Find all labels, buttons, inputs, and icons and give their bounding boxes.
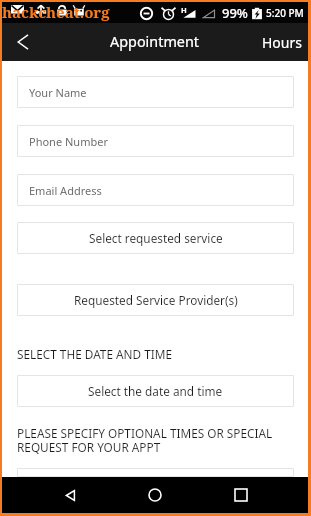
staticText: 5:20 PM — [266, 6, 304, 20]
staticText: PLEASE SPECIFY OPTIONAL TIMES OR SPECIAL… — [17, 425, 294, 455]
button[interactable]: Phone Number — [17, 125, 294, 157]
button[interactable]: Back — [52, 477, 88, 513]
staticText: hackcheat.org — [2, 2, 110, 22]
staticText: Email Address — [29, 183, 102, 198]
button[interactable]: Recent apps — [223, 477, 259, 513]
staticText: Select the date and time — [88, 383, 223, 399]
button[interactable]: Requested Service Provider(s) — [17, 284, 294, 316]
staticText: Your Name — [29, 85, 87, 100]
staticText: Select requested service — [89, 230, 223, 246]
staticText: Hours — [262, 33, 302, 52]
button[interactable]: Select the date and time — [17, 375, 294, 407]
button[interactable]: Back — [2, 23, 44, 61]
staticText: H — [181, 5, 187, 15]
staticText: 99% — [222, 4, 248, 22]
button[interactable]: Email Address — [17, 174, 294, 206]
button[interactable]: Select requested service — [17, 222, 294, 254]
button[interactable]: Home — [137, 477, 173, 513]
staticText: Requested Service Provider(s) — [74, 292, 238, 308]
button[interactable]: Your Name — [17, 76, 294, 108]
button[interactable] — [17, 468, 294, 477]
staticText: Appointment — [110, 32, 200, 52]
button[interactable]: Hours — [251, 23, 308, 61]
staticText: Phone Number — [29, 134, 108, 149]
staticText: SELECT THE DATE AND TIME — [17, 346, 173, 362]
